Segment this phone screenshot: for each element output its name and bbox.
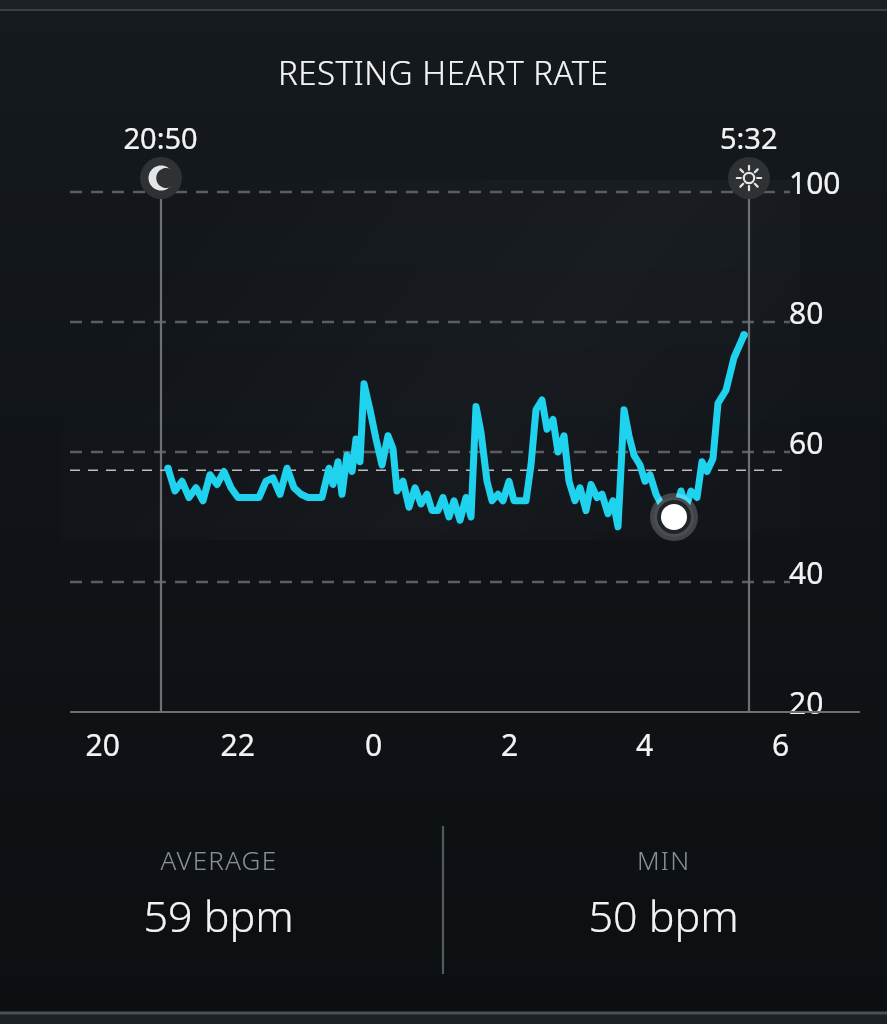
button[interactable]: Resting heart rate chart	[0, 0, 887, 1024]
